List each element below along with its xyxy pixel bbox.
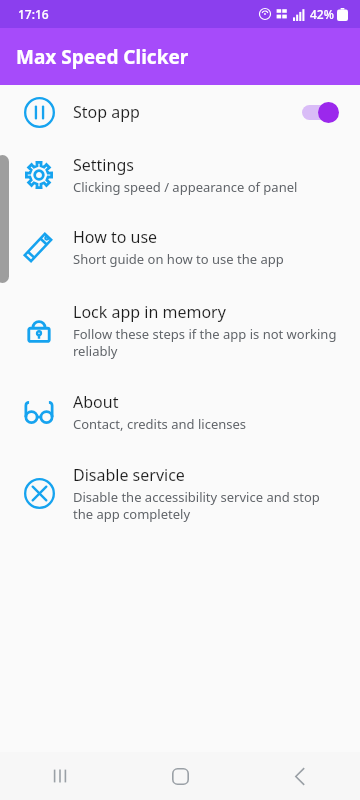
- button[interactable]: Stop app: [0, 85, 360, 139]
- button[interactable]: Home: [120, 752, 240, 800]
- staticText: Lock app in memory: [73, 301, 226, 323]
- staticText: Settings: [73, 154, 134, 176]
- staticText: About: [73, 391, 119, 413]
- button[interactable]: Disable service: [0, 447, 360, 539]
- staticText: 42%: [310, 6, 334, 22]
- staticText: Max Speed Clicker: [16, 44, 189, 70]
- staticText: Contact, credits and licenses: [73, 415, 247, 433]
- button[interactable]: About: [0, 377, 360, 447]
- staticText: Clicking speed / appearance of panel: [73, 178, 298, 196]
- staticText: How to use: [73, 226, 158, 248]
- staticText: Disable the accessibility service and st…: [73, 488, 338, 523]
- staticText: Stop app: [73, 101, 140, 123]
- staticText: Follow these steps if the app is not wor…: [73, 325, 338, 360]
- button[interactable]: Recent apps: [0, 752, 120, 800]
- staticText: Disable service: [73, 464, 185, 486]
- staticText: 17:16: [18, 6, 49, 22]
- button[interactable]: Settings: [0, 139, 360, 211]
- button[interactable]: Back: [240, 752, 360, 800]
- button[interactable]: Lock app in memory: [0, 283, 360, 377]
- button[interactable]: How to use: [0, 211, 360, 283]
- staticText: Short guide on how to use the app: [73, 250, 284, 268]
